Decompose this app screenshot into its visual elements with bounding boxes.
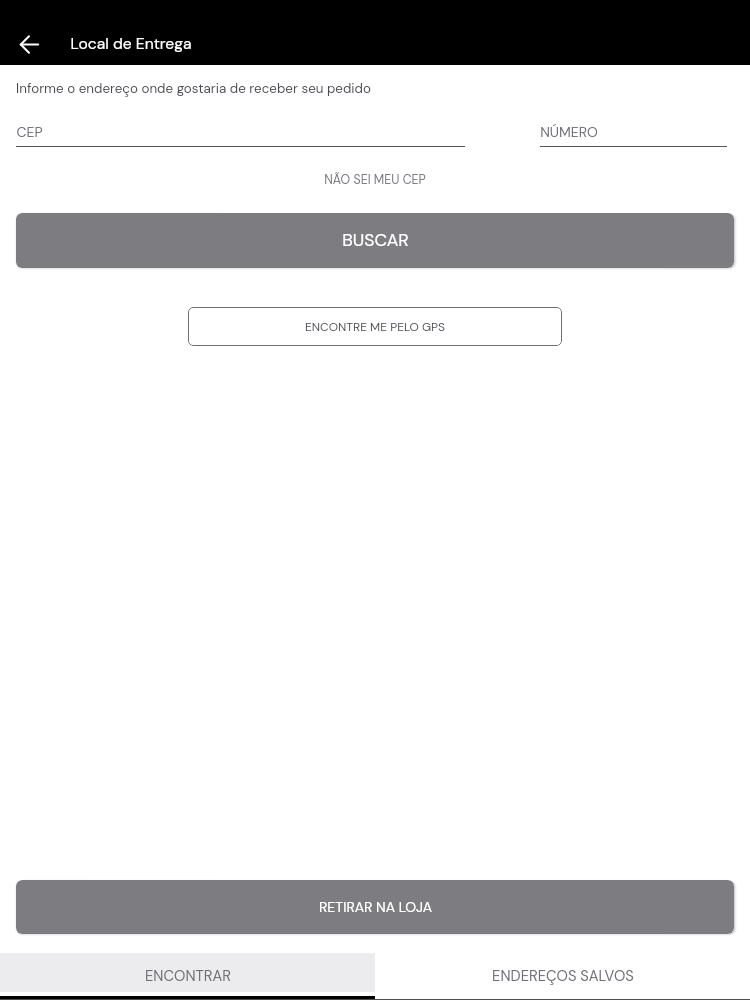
button[interactable]: Back [5,20,53,68]
staticText: BUSCAR [342,229,409,252]
staticText: Local de Entrega [70,33,192,53]
staticText: ENCONTRE ME PELO GPS [305,319,445,335]
staticText: CEP [16,123,43,141]
button[interactable]: RETIRAR NA LOJA [16,880,734,934]
button[interactable]: BUSCAR [16,213,734,268]
button[interactable]: NÃO SEI MEU CEP [310,166,440,194]
staticText: ENCONTRAR [145,966,231,985]
staticText: ENDEREÇOS SALVOS [492,966,634,985]
staticText: NÃO SEI MEU CEP [324,172,426,188]
staticText: Informe o endereço onde gostaria de rece… [16,80,371,97]
button[interactable]: ENCONTRAR [0,953,375,992]
staticText: NÚMERO [540,123,598,141]
button[interactable]: ENCONTRE ME PELO GPS [188,307,562,346]
staticText: RETIRAR NA LOJA [319,898,432,916]
button[interactable]: ENDEREÇOS SALVOS [375,953,750,992]
